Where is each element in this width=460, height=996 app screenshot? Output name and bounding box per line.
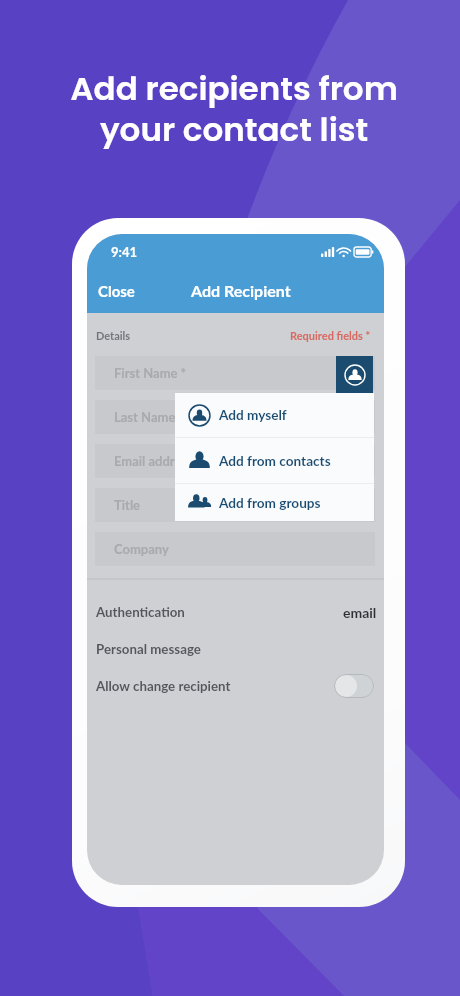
staticText: Last Name * <box>114 409 185 425</box>
staticText: Email address * <box>114 453 202 469</box>
staticText: Close <box>98 282 135 300</box>
staticText: 9:41 <box>111 244 137 260</box>
staticText: Add from groups <box>219 495 321 511</box>
staticText: Company <box>114 541 169 557</box>
staticText: Personal message <box>96 641 201 657</box>
button[interactable]: Authentication <box>87 597 384 627</box>
button[interactable]: Close <box>87 282 146 300</box>
staticText: Add Recipient <box>191 281 291 300</box>
button[interactable]: Add from groups <box>175 484 374 521</box>
staticText: Authentication <box>96 604 185 620</box>
button[interactable]: Add myself <box>175 393 374 437</box>
button[interactable]: Personal message <box>87 634 384 664</box>
button[interactable]: Allow change recipient <box>87 671 384 701</box>
staticText: Add from contacts <box>219 453 331 469</box>
staticText: Allow change recipient <box>96 678 231 694</box>
staticText: Title <box>114 497 141 513</box>
staticText: email <box>343 604 377 621</box>
button[interactable]: Add from contacts <box>175 438 374 483</box>
staticText: Add recipients from your contact list <box>4 66 460 152</box>
staticText: Add myself <box>219 407 287 423</box>
staticText: First Name * <box>114 365 187 381</box>
staticText: Details <box>96 329 131 342</box>
button[interactable]: Add recipient <box>336 356 373 393</box>
staticText: Required fields * <box>290 329 371 342</box>
